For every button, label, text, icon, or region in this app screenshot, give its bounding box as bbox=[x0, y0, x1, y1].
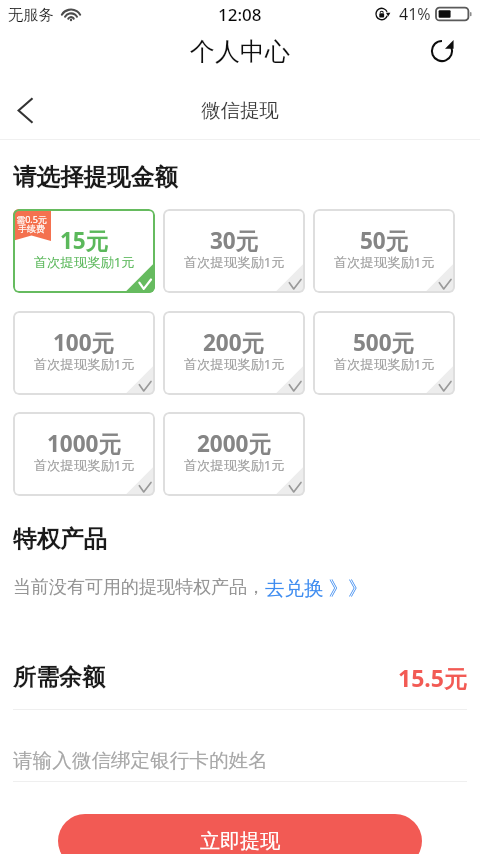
staticText: 首次提现奖励1元 bbox=[34, 456, 135, 474]
button[interactable]: 15元 bbox=[13, 209, 155, 293]
staticText: 2000元 bbox=[197, 428, 271, 459]
button[interactable]: 30元 bbox=[163, 209, 305, 293]
button[interactable]: 100元 bbox=[13, 311, 155, 395]
staticText: 所需余额 bbox=[13, 663, 105, 692]
button[interactable]: 1000元 bbox=[13, 412, 155, 496]
staticText: 41% bbox=[399, 3, 431, 25]
staticText: 立即提现 bbox=[200, 829, 280, 854]
button[interactable]: 立即提现 bbox=[58, 814, 422, 854]
staticText: 微信提现 bbox=[201, 98, 279, 123]
staticText: 首次提现奖励1元 bbox=[34, 355, 135, 373]
staticText: 需0.5元 bbox=[16, 213, 47, 225]
staticText: 50元 bbox=[360, 225, 409, 256]
staticText: 30元 bbox=[210, 225, 259, 256]
staticText: 当前没有可用的提现特权产品， bbox=[13, 576, 265, 599]
staticText: 500元 bbox=[353, 327, 415, 358]
staticText: 首次提现奖励1元 bbox=[184, 253, 285, 271]
button[interactable]: 去兑换 》》 bbox=[265, 574, 368, 601]
staticText: 首次提现奖励1元 bbox=[184, 456, 285, 474]
button[interactable]: 500元 bbox=[313, 311, 455, 395]
staticText: 15.5元 bbox=[398, 662, 467, 693]
staticText: 1000元 bbox=[47, 428, 121, 459]
staticText: 特权产品 bbox=[13, 524, 107, 554]
button[interactable]: 200元 bbox=[163, 311, 305, 395]
staticText: 15元 bbox=[60, 225, 109, 256]
button[interactable]: Back bbox=[9, 94, 41, 126]
staticText: 12:08 bbox=[218, 3, 262, 26]
button[interactable]: 50元 bbox=[313, 209, 455, 293]
staticText: 100元 bbox=[53, 327, 115, 358]
staticText: 个人中心 bbox=[190, 36, 290, 67]
staticText: 请输入微信绑定银行卡的姓名 bbox=[13, 748, 268, 773]
button[interactable]: Refresh bbox=[422, 31, 462, 71]
staticText: 手续费 bbox=[18, 223, 45, 234]
staticText: 首次提现奖励1元 bbox=[334, 355, 435, 373]
staticText: 首次提现奖励1元 bbox=[184, 355, 285, 373]
staticText: 首次提现奖励1元 bbox=[334, 253, 435, 271]
staticText: 请选择提现金额 bbox=[13, 162, 178, 192]
staticText: 无服务 bbox=[8, 5, 54, 24]
staticText: 200元 bbox=[203, 327, 265, 358]
button[interactable]: 2000元 bbox=[163, 412, 305, 496]
staticText: 首次提现奖励1元 bbox=[34, 253, 135, 271]
